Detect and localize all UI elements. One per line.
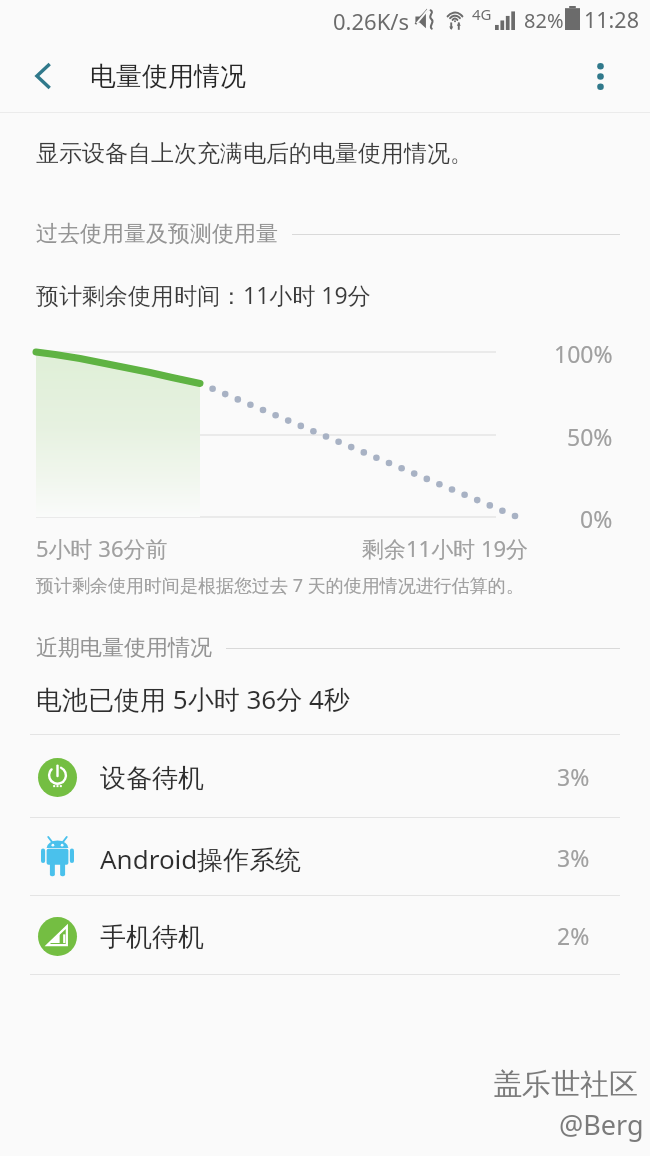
button[interactable]: 手机待机 [0, 896, 650, 975]
staticText: @Berg [559, 1106, 644, 1143]
staticText: 设备待机 [100, 762, 204, 795]
staticText: 显示设备自上次充满电后的电量使用情况。 [36, 139, 473, 168]
staticText: 3% [557, 842, 590, 873]
staticText: 82% [524, 7, 564, 34]
staticText: 0.26K/s [333, 6, 409, 36]
staticText: 预计剩余使用时间是根据您过去 7 天的使用情况进行估算的。 [36, 573, 524, 598]
staticText: 2% [557, 920, 590, 951]
staticText: 盖乐世社区 [493, 1066, 638, 1103]
button[interactable]: Android操作系统 [0, 818, 650, 896]
button[interactable]: Back [7, 40, 79, 112]
staticText: 电量使用情况 [90, 60, 246, 93]
staticText: 手机待机 [100, 921, 204, 954]
staticText: 4G [472, 4, 492, 24]
staticText: 100% [554, 338, 613, 369]
staticText: 3% [557, 761, 590, 792]
button[interactable]: 设备待机 [0, 735, 650, 818]
staticText: Android操作系统 [100, 841, 302, 877]
staticText: 预计剩余使用时间：11小时 19分 [36, 279, 371, 310]
button[interactable]: More options [564, 40, 636, 112]
staticText: 0% [580, 503, 613, 534]
staticText: 过去使用量及预测使用量 [36, 220, 278, 248]
staticText: 50% [567, 421, 613, 452]
staticText: 剩余11小时 19分 [362, 533, 529, 563]
staticText: 电池已使用 5小时 36分 4秒 [36, 681, 350, 717]
staticText: 5小时 36分前 [36, 533, 168, 563]
staticText: 11:28 [584, 5, 639, 34]
staticText: 近期电量使用情况 [36, 634, 212, 662]
